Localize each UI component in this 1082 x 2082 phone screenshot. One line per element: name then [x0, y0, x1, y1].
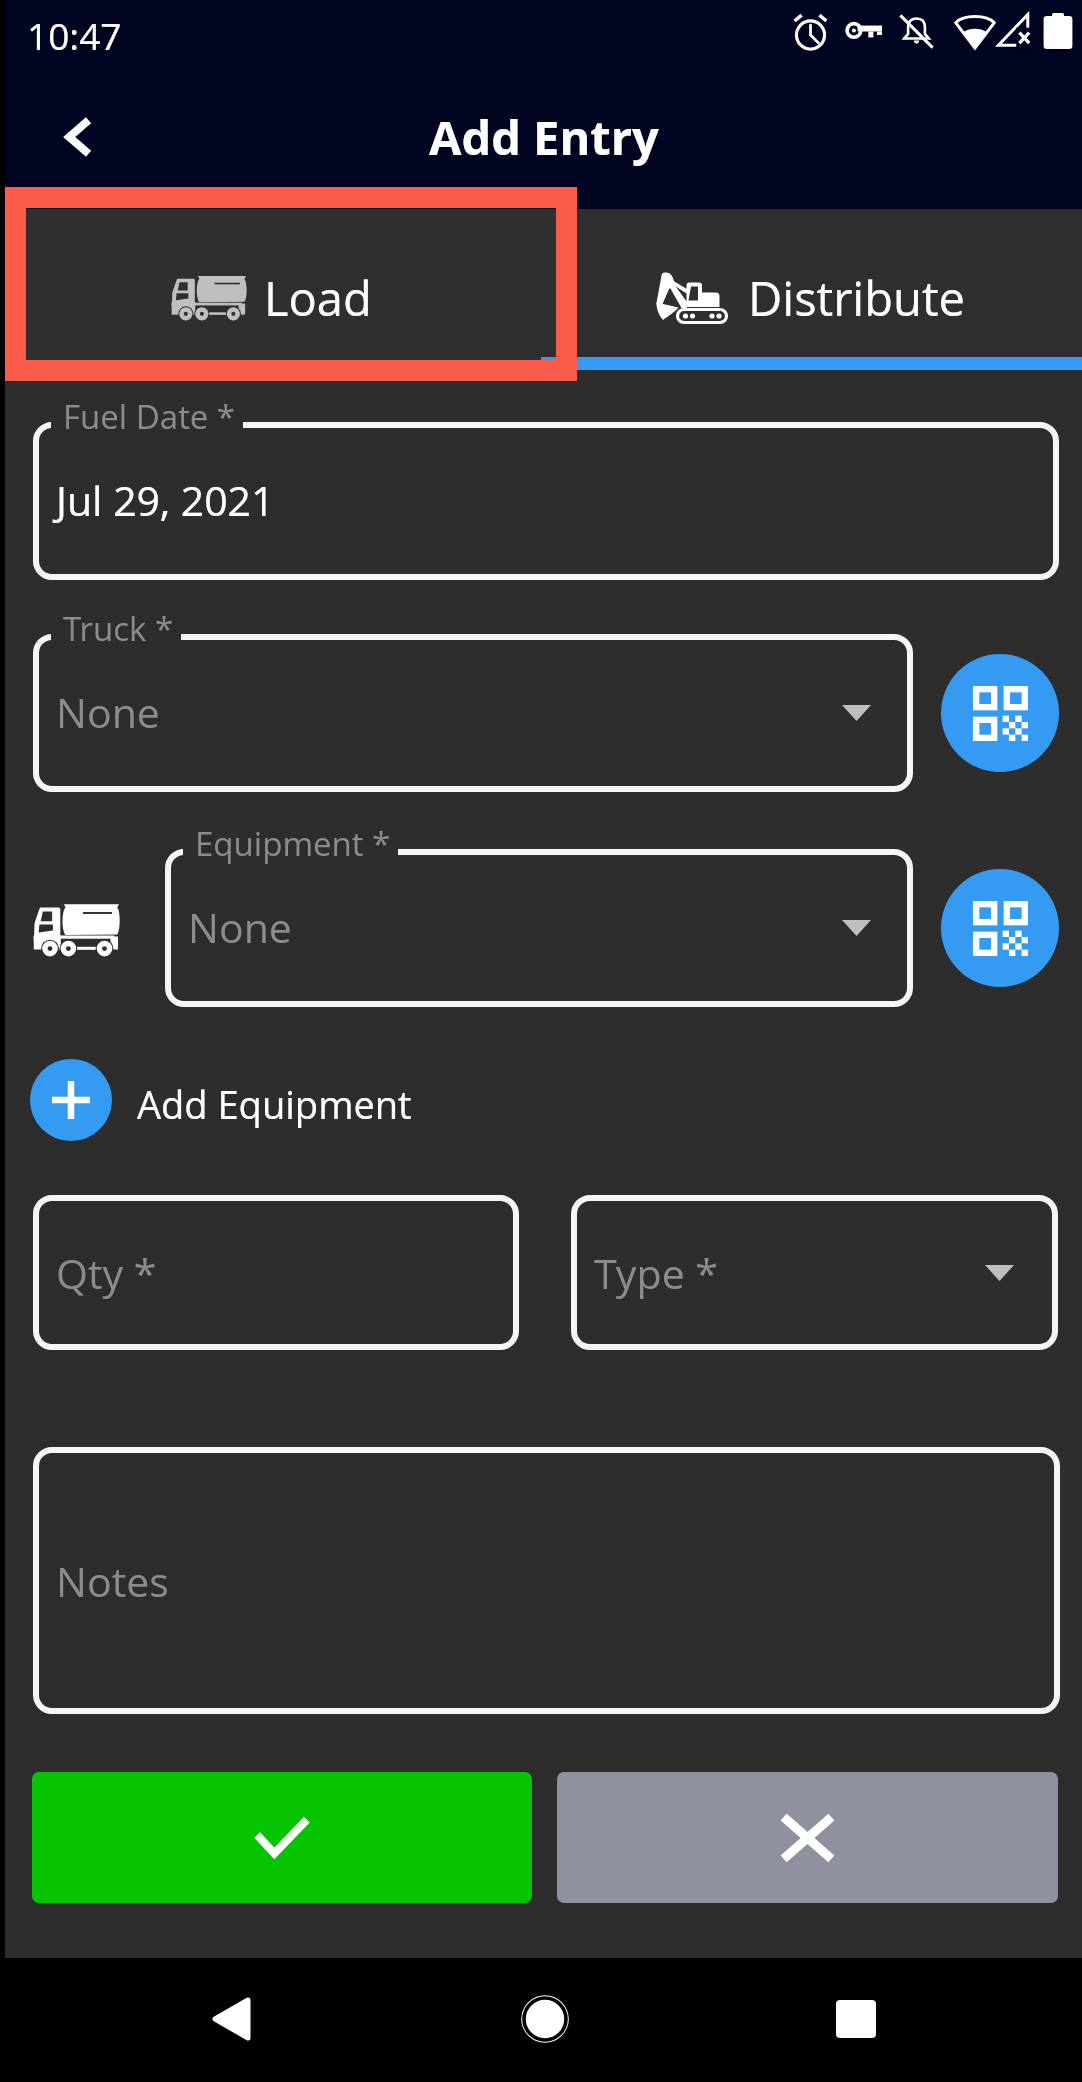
staticText: Notes: [56, 1553, 169, 1609]
staticText: Qty *: [56, 1245, 157, 1301]
staticText: Load: [264, 266, 372, 330]
staticText: Distribute: [748, 266, 965, 330]
staticText: Jul 29, 2021: [56, 472, 275, 528]
button[interactable]: Add Equipment: [25, 1055, 455, 1153]
button[interactable]: Load: [5, 209, 543, 370]
button[interactable]: Truck *: [33, 606, 913, 792]
button[interactable]: Distribute: [543, 209, 1082, 370]
button[interactable]: Scan code: [941, 654, 1059, 772]
staticText: Truck *: [63, 606, 174, 651]
button[interactable]: Fuel Date *: [33, 394, 1059, 580]
button[interactable]: Save: [32, 1772, 532, 1903]
button[interactable]: Home: [495, 1969, 595, 2069]
button[interactable]: Equipment *: [165, 821, 913, 1007]
button[interactable]: Cancel: [557, 1772, 1058, 1903]
staticText: Add Entry: [429, 105, 659, 169]
staticText: Equipment *: [195, 821, 391, 866]
staticText: Fuel Date *: [63, 394, 236, 439]
button[interactable]: Notes: [33, 1447, 1060, 1714]
button[interactable]: Type *: [571, 1195, 1058, 1350]
button[interactable]: Qty *: [33, 1195, 519, 1350]
button[interactable]: Scan code: [941, 869, 1059, 987]
staticText: None: [188, 899, 292, 955]
staticText: Add Equipment: [137, 1078, 412, 1130]
button[interactable]: Navigate up: [39, 98, 117, 176]
button[interactable]: Recent apps: [806, 1969, 906, 2069]
staticText: Type *: [594, 1245, 718, 1301]
button[interactable]: Back: [181, 1969, 281, 2069]
staticText: 10:47: [27, 10, 122, 60]
staticText: None: [56, 684, 160, 740]
